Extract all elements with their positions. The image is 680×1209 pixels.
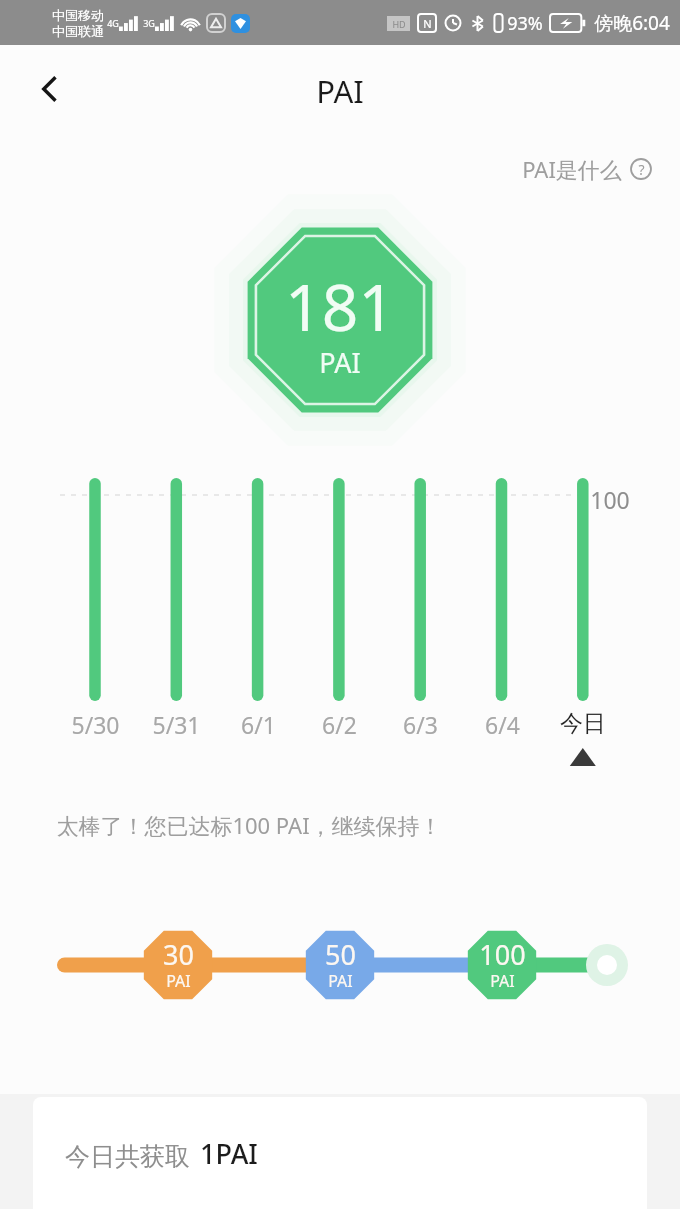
button[interactable]: 30 xyxy=(138,925,218,1005)
button[interactable]: PAI是什么 xyxy=(516,148,658,190)
staticText: PAI xyxy=(490,970,515,992)
staticText: 50 xyxy=(325,936,356,973)
staticText: 6/2 xyxy=(322,709,357,740)
staticText: 中国联通 xyxy=(52,23,104,39)
button[interactable]: Back xyxy=(24,62,78,116)
staticText: PAI是什么 xyxy=(522,154,622,184)
button[interactable]: 50 xyxy=(300,925,380,1005)
staticText: PAI xyxy=(316,70,364,112)
staticText: 6/3 xyxy=(403,709,438,740)
staticText: 4G xyxy=(107,17,119,29)
staticText: 181 xyxy=(285,263,395,350)
staticText: 6/4 xyxy=(485,709,520,740)
staticText: HD xyxy=(392,18,406,30)
staticText: 30 xyxy=(163,936,194,973)
staticText: PAI xyxy=(319,344,361,381)
staticText: 太棒了！您已达标100 PAI，继续保持！ xyxy=(56,810,442,840)
staticText: 1PAI xyxy=(200,1135,258,1172)
staticText: 6/1 xyxy=(241,709,276,740)
staticText: N xyxy=(423,16,432,31)
staticText: 100 xyxy=(590,484,630,515)
staticText: 3G xyxy=(143,17,155,29)
staticText: PAI xyxy=(328,970,353,992)
staticText: 傍晚6:04 xyxy=(594,10,670,36)
staticText: 今日共获取 xyxy=(65,1141,190,1172)
staticText: 5/31 xyxy=(152,709,201,740)
staticText: 5/30 xyxy=(71,709,120,740)
staticText: 100 xyxy=(479,936,526,973)
staticText: 中国移动 xyxy=(52,7,104,23)
staticText: PAI xyxy=(166,970,191,992)
staticText: ? xyxy=(638,160,645,179)
staticText: 93% xyxy=(507,11,543,36)
button[interactable]: 100 xyxy=(462,925,542,1005)
staticText: 今日 xyxy=(560,709,606,738)
button[interactable]: 今日共获取 xyxy=(33,1097,647,1209)
